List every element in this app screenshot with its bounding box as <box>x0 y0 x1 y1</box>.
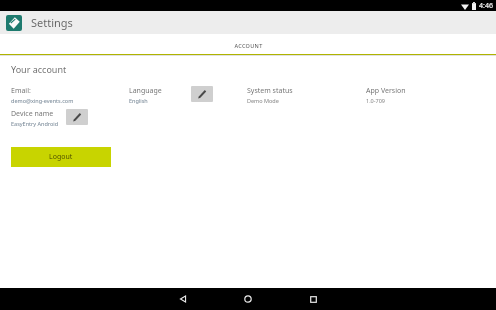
button[interactable]: Edit device name <box>66 109 88 125</box>
staticText: Your account <box>11 63 67 75</box>
staticText: demo@xing-events.com <box>11 97 74 104</box>
button[interactable]: Back <box>163 288 203 310</box>
staticText: EasyEntry Android <box>11 120 59 127</box>
staticText: 1.0-709 <box>366 97 385 104</box>
button[interactable]: App icon, navigate up <box>2 11 26 34</box>
staticText: 4:46 <box>479 1 493 11</box>
staticText: App Version <box>366 86 406 96</box>
staticText: ACCOUNT <box>234 42 263 49</box>
button[interactable]: Logout <box>11 147 111 167</box>
button[interactable]: ACCOUNT <box>0 34 496 56</box>
button[interactable]: Edit language <box>191 86 213 102</box>
button[interactable]: Recent apps <box>293 288 333 310</box>
staticText: Logout <box>49 152 73 162</box>
staticText: System status <box>247 86 293 96</box>
staticText: Device name <box>11 109 54 119</box>
staticText: Language <box>129 86 162 96</box>
staticText: English <box>129 97 148 104</box>
staticText: Demo Mode <box>247 97 279 104</box>
button[interactable]: Home <box>228 288 268 310</box>
staticText: Settings <box>31 15 73 30</box>
staticText: Email: <box>11 86 31 96</box>
